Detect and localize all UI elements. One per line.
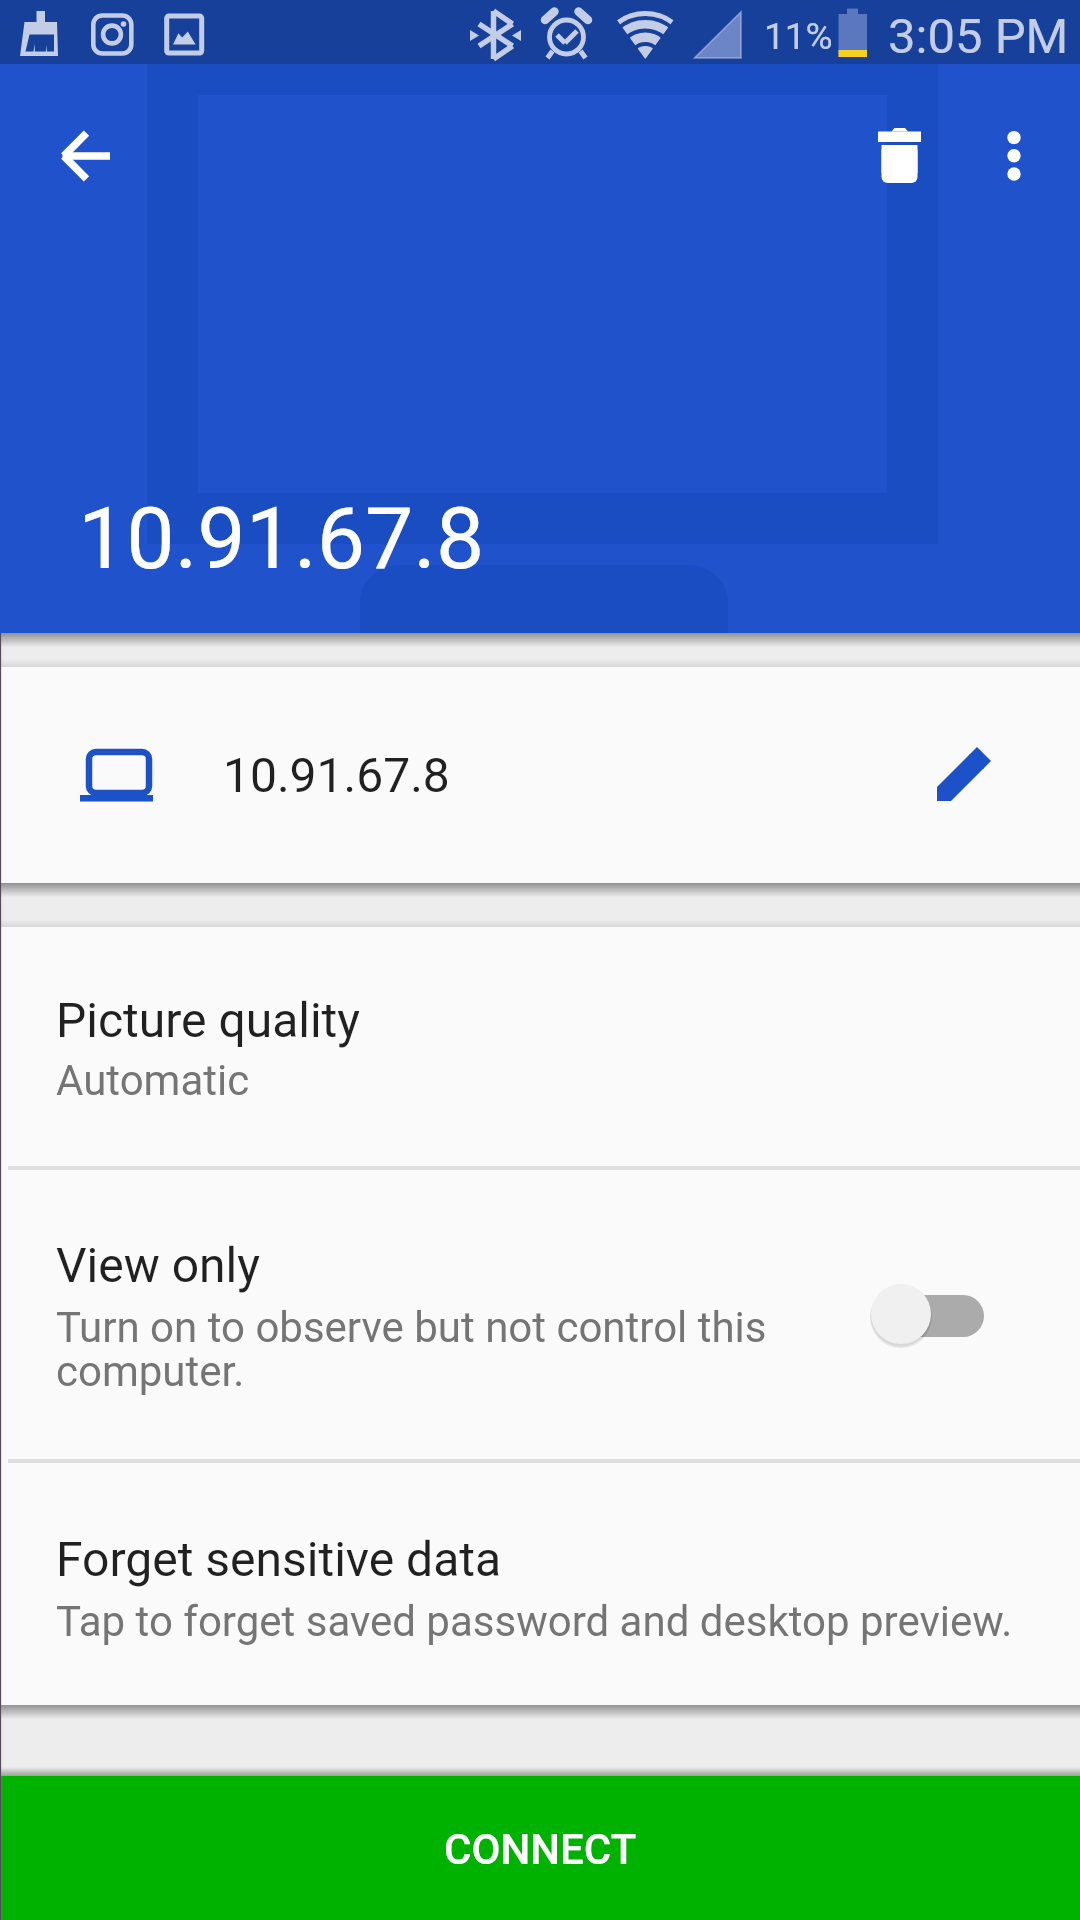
staticText: 10.91.67.8: [78, 488, 485, 589]
button[interactable]: Back: [37, 108, 133, 204]
button[interactable]: Edit: [916, 725, 1012, 821]
staticText: CONNECT: [444, 1825, 637, 1874]
staticText: Forget sensitive data: [56, 1531, 502, 1587]
button[interactable]: Delete: [851, 108, 947, 204]
button[interactable]: CONNECT: [0, 1776, 1080, 1920]
button[interactable]: Forget sensitive data: [0, 1463, 1080, 1705]
staticText: Automatic: [56, 1060, 250, 1104]
staticText: Tap to forget saved password and desktop…: [56, 1601, 1013, 1645]
staticText: View only: [56, 1237, 260, 1293]
button[interactable]: View only: [0, 1170, 1080, 1459]
staticText: 3:05 PM: [888, 8, 1069, 64]
staticText: 10.91.67.8: [223, 747, 450, 803]
button[interactable]: More options: [966, 108, 1062, 204]
button[interactable]: View only toggle: [840, 1270, 1000, 1360]
staticText: Picture quality: [56, 992, 361, 1048]
staticText: 11%: [764, 15, 833, 58]
button[interactable]: Picture quality: [0, 927, 1080, 1166]
staticText: Turn on to observe but not control this …: [56, 1307, 767, 1395]
button[interactable]: 10.91.67.8: [0, 667, 1080, 883]
